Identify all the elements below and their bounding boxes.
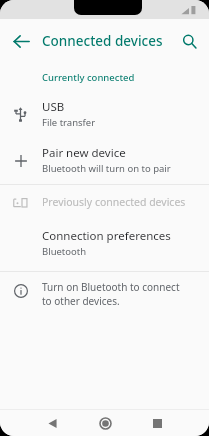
button[interactable]: Pair new device bbox=[0, 140, 209, 180]
staticText: Bluetooth bbox=[42, 245, 87, 258]
button[interactable]: Back bbox=[6, 26, 36, 56]
button[interactable]: Previously connected devices bbox=[0, 185, 209, 219]
staticText: Pair new device bbox=[42, 145, 126, 161]
button[interactable]: Recent apps bbox=[145, 411, 169, 435]
button[interactable]: Connection preferences bbox=[0, 223, 209, 263]
staticText: Turn on Bluetooth to connect to other de… bbox=[42, 280, 191, 308]
button[interactable]: Home bbox=[93, 411, 117, 435]
staticText: Connection preferences bbox=[42, 228, 171, 244]
staticText: Bluetooth will turn on to pair bbox=[42, 162, 171, 175]
staticText: File transfer bbox=[42, 116, 96, 129]
button[interactable]: USB bbox=[0, 94, 209, 134]
staticText: USB bbox=[42, 99, 65, 115]
staticText: Currently connected bbox=[42, 71, 135, 84]
staticText: Previously connected devices bbox=[42, 195, 186, 209]
button[interactable]: Back bbox=[40, 411, 64, 435]
button[interactable]: Search bbox=[174, 26, 204, 56]
staticText: Connected devices bbox=[42, 32, 163, 50]
